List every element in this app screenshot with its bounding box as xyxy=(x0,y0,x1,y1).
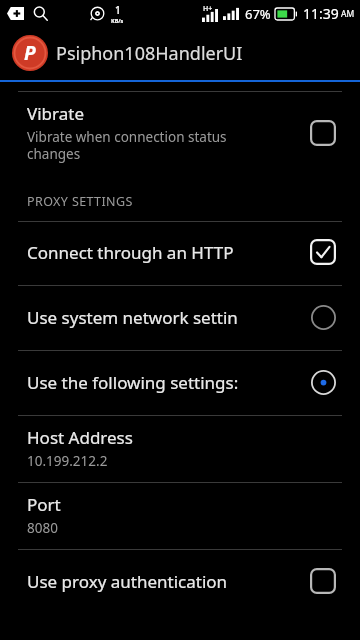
button[interactable]: Connect through an HTTP xyxy=(0,222,360,285)
staticText: Use proxy authentication xyxy=(27,570,228,593)
staticText: Use system network settin xyxy=(27,306,238,329)
button[interactable]: Use the following settings: xyxy=(0,351,360,415)
staticText: 11:39 xyxy=(303,4,339,23)
staticText: 67% xyxy=(245,5,271,23)
staticText: AM xyxy=(341,8,355,20)
staticText: Port xyxy=(27,493,61,516)
staticText: 10.199.212.2 xyxy=(27,452,108,470)
staticText: Vibrate xyxy=(27,102,84,125)
staticText: H+ xyxy=(203,4,213,14)
button[interactable]: Not selected xyxy=(308,302,338,332)
button[interactable]: Unchecked xyxy=(308,566,338,596)
button[interactable]: Selected xyxy=(308,367,338,397)
button[interactable]: Host Address xyxy=(0,416,360,482)
staticText: Connect through an HTTP xyxy=(27,241,234,264)
button[interactable]: Use system network settin xyxy=(0,286,360,350)
staticText: 1 xyxy=(115,3,121,17)
button[interactable]: Vibrate xyxy=(0,92,360,177)
staticText: Psiphon108HandlerUI xyxy=(56,41,243,66)
staticText: Host Address xyxy=(27,426,133,449)
button[interactable]: Use proxy authentication xyxy=(0,550,360,614)
staticText: Use the following settings: xyxy=(27,371,239,394)
button[interactable]: Checked xyxy=(308,237,338,267)
button[interactable]: Unchecked xyxy=(308,118,338,148)
staticText: Vibrate when connection status changes xyxy=(27,128,227,163)
button[interactable]: Port xyxy=(0,483,360,549)
staticText: P xyxy=(24,40,36,66)
staticText: 8080 xyxy=(27,519,58,537)
staticText: PROXY SETTINGS xyxy=(27,193,133,210)
staticText: KB/s xyxy=(111,17,124,24)
